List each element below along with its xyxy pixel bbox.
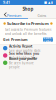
staticText: See who likes you: [9, 51, 39, 56]
button[interactable]: Back: [0, 5, 10, 13]
staticText: Be seen by more people: [9, 61, 34, 69]
staticText: Get Premium: [3, 37, 28, 42]
button[interactable]: Subscribe: [43, 37, 53, 42]
staticText: Premium: [7, 13, 21, 18]
staticText: ■ ▲ ▮: [44, 1, 53, 4]
staticText: Subscribe: [43, 35, 52, 44]
staticText: Get access to Premium features and unloc…: [5, 27, 51, 36]
button[interactable]: Coins: [28, 13, 56, 18]
staticText: 9:41: [3, 0, 10, 5]
button[interactable]: See who likes you: [0, 52, 56, 59]
staticText: Subscribe to Premium: [7, 21, 49, 26]
staticText: Activity Report: [9, 44, 32, 48]
staticText: Shop: [22, 6, 33, 12]
staticText: Coins: [37, 13, 46, 18]
button[interactable]: Activity Report: [0, 44, 56, 52]
button[interactable]: Premium: [0, 13, 28, 18]
button[interactable]: Boost your profile: [0, 59, 56, 66]
staticText: Unlock hidden likes: [9, 56, 37, 60]
staticText: Boost your profile: [9, 56, 37, 61]
staticText: See your profile stats: [9, 49, 40, 52]
